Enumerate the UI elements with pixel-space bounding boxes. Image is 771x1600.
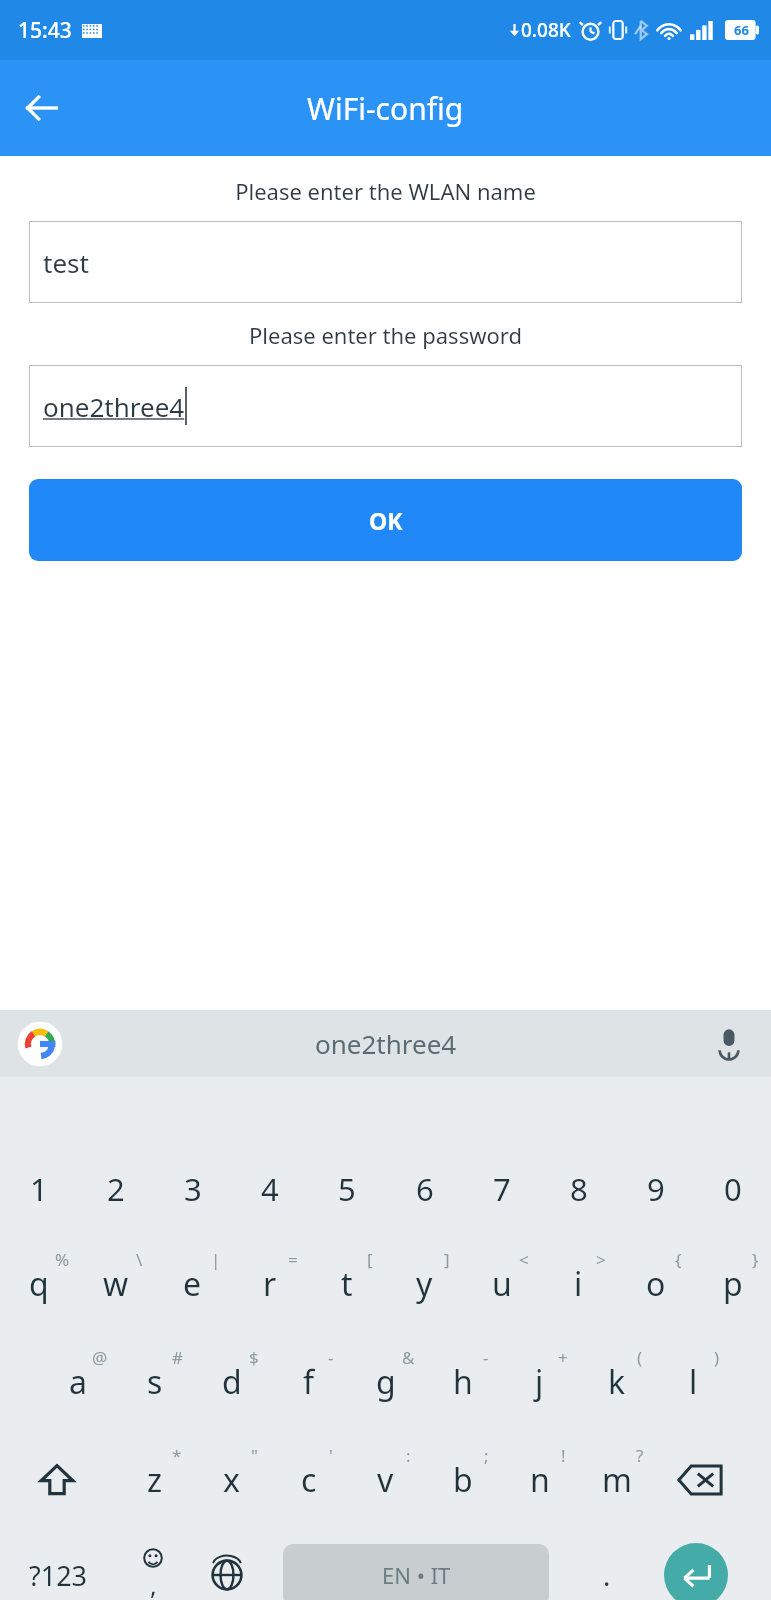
staticText: [ <box>367 1248 373 1271</box>
staticText: g <box>376 1360 396 1404</box>
staticText: = <box>288 1248 298 1271</box>
button[interactable]: r <box>231 1251 308 1317</box>
button[interactable]: EN • IT <box>283 1544 549 1600</box>
staticText: & <box>402 1346 415 1369</box>
button[interactable]: w <box>77 1251 154 1317</box>
button[interactable]: Back <box>0 66 84 150</box>
button[interactable]: i <box>540 1251 617 1317</box>
staticText: " <box>251 1444 258 1467</box>
staticText: | <box>211 1248 221 1271</box>
button[interactable]: 1 <box>0 1156 77 1222</box>
button[interactable]: q <box>0 1251 77 1317</box>
staticText: Please enter the password <box>0 320 771 350</box>
staticText: s <box>147 1360 163 1404</box>
button[interactable]: h <box>424 1349 501 1415</box>
button[interactable]: z <box>116 1447 193 1513</box>
staticText: 1 <box>30 1168 48 1210</box>
button[interactable]: l <box>655 1349 732 1415</box>
staticText: - <box>483 1346 489 1369</box>
staticText: ' <box>329 1444 333 1467</box>
button[interactable]: d <box>193 1349 270 1415</box>
staticText: j <box>535 1360 544 1404</box>
button[interactable]: test <box>29 221 742 303</box>
button[interactable]: y <box>386 1251 463 1317</box>
button[interactable]: v <box>347 1447 424 1513</box>
staticText: 2 <box>107 1168 125 1210</box>
button[interactable]: Voice input <box>705 1020 753 1068</box>
button[interactable]: b <box>424 1447 501 1513</box>
staticText: i <box>574 1262 583 1306</box>
staticText: ) <box>714 1346 720 1369</box>
staticText: 6 <box>416 1168 434 1210</box>
staticText: m <box>602 1458 632 1502</box>
staticText: 7 <box>493 1168 511 1210</box>
button[interactable]: 0 <box>694 1156 771 1222</box>
staticText: test <box>43 245 89 280</box>
button[interactable]: c <box>270 1447 347 1513</box>
staticText: 8 <box>570 1168 588 1210</box>
staticText: e <box>183 1262 202 1306</box>
staticText: c <box>301 1458 317 1502</box>
button[interactable]: Backspace <box>660 1447 740 1513</box>
staticText: WiFi-config <box>307 88 464 129</box>
button[interactable]: 4 <box>231 1156 308 1222</box>
staticText: > <box>596 1248 606 1271</box>
staticText: : <box>406 1444 411 1467</box>
button[interactable]: Change language <box>190 1542 264 1600</box>
staticText: h <box>453 1360 473 1404</box>
staticText: ( <box>637 1346 643 1369</box>
button[interactable]: n <box>501 1447 578 1513</box>
button[interactable]: a <box>39 1349 116 1415</box>
staticText: one2three4 <box>43 389 185 424</box>
staticText: 15:43 <box>18 16 72 45</box>
button[interactable]: . <box>570 1542 644 1600</box>
button[interactable]: o <box>617 1251 694 1317</box>
staticText: r <box>263 1262 277 1306</box>
staticText: . <box>603 1557 611 1594</box>
staticText: % <box>55 1248 70 1271</box>
staticText: u <box>492 1262 512 1306</box>
button[interactable]: OK <box>29 479 742 561</box>
staticText: ] <box>444 1248 450 1271</box>
button[interactable]: x <box>193 1447 270 1513</box>
button[interactable]: Google <box>12 1016 68 1072</box>
button[interactable]: f <box>270 1349 347 1415</box>
button[interactable]: 7 <box>463 1156 540 1222</box>
button[interactable]: e <box>154 1251 231 1317</box>
staticText: OK <box>369 505 403 536</box>
button[interactable]: m <box>578 1447 655 1513</box>
button[interactable]: s <box>116 1349 193 1415</box>
staticText: 5 <box>338 1168 356 1210</box>
button[interactable]: p <box>694 1251 771 1317</box>
button[interactable]: j <box>501 1349 578 1415</box>
button[interactable]: one2three4 <box>315 1026 457 1061</box>
button[interactable]: 2 <box>77 1156 154 1222</box>
staticText: { <box>675 1248 682 1271</box>
staticText: v <box>377 1458 394 1502</box>
staticText: b <box>453 1458 473 1502</box>
button[interactable]: 6 <box>386 1156 463 1222</box>
button[interactable]: 8 <box>540 1156 617 1222</box>
button[interactable]: 3 <box>154 1156 231 1222</box>
staticText: ?123 <box>29 1557 88 1594</box>
button[interactable]: Emoji <box>116 1542 190 1600</box>
button[interactable]: 5 <box>308 1156 385 1222</box>
button[interactable]: u <box>463 1251 540 1317</box>
staticText: o <box>646 1262 666 1306</box>
staticText: f <box>303 1360 315 1404</box>
button[interactable]: Shift <box>20 1447 94 1513</box>
staticText: n <box>530 1458 550 1502</box>
button[interactable]: one2three4 <box>29 365 742 447</box>
button[interactable]: t <box>308 1251 385 1317</box>
staticText: 66 <box>734 21 749 39</box>
staticText: p <box>723 1262 743 1306</box>
staticText: @ <box>92 1346 108 1369</box>
button[interactable]: k <box>578 1349 655 1415</box>
staticText: y <box>416 1262 433 1306</box>
button[interactable]: 9 <box>617 1156 694 1222</box>
button[interactable]: g <box>347 1349 424 1415</box>
staticText: - <box>328 1346 334 1369</box>
button[interactable]: ?123 <box>6 1542 111 1600</box>
button[interactable]: Enter <box>664 1543 728 1600</box>
staticText: q <box>29 1262 49 1306</box>
